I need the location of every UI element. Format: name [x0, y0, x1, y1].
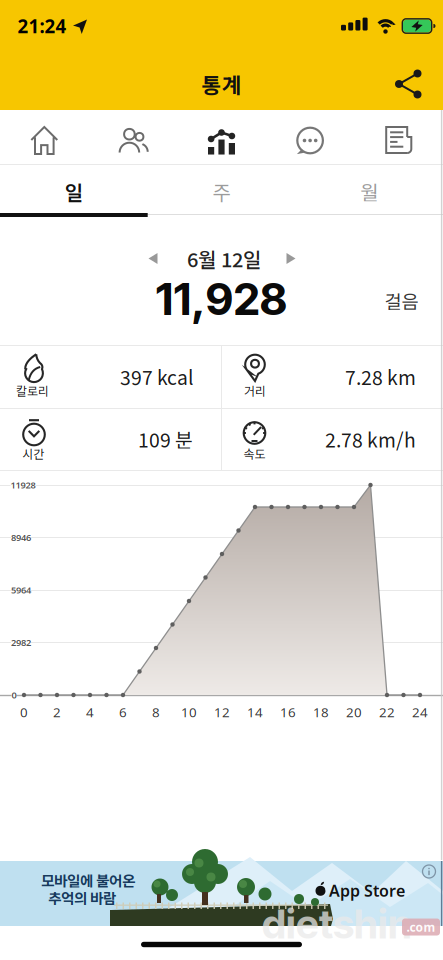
staticText: 주 [212, 177, 230, 206]
staticText: 7.28 km [345, 362, 416, 390]
staticText: 일 [65, 177, 83, 206]
staticText: 10 [181, 703, 197, 721]
staticText: 모바일에 불어온 [41, 869, 135, 891]
staticText: 시간 [22, 445, 44, 462]
staticText: 21:24 [17, 14, 66, 38]
staticText: 6월 12일 [187, 244, 261, 273]
button[interactable]: 주 [148, 167, 295, 216]
button[interactable]: Share [386, 62, 430, 106]
staticText: 11928 [10, 479, 35, 491]
button[interactable]: Chat [266, 110, 354, 164]
button[interactable]: Ad info [419, 861, 439, 881]
staticText: 397 kcal [120, 362, 193, 390]
button[interactable]: 일 [0, 167, 148, 216]
button[interactable]: Statistics [177, 110, 266, 164]
button[interactable]: Home [0, 110, 89, 164]
staticText: 12 [214, 703, 230, 721]
button[interactable]: Next day [272, 238, 312, 278]
staticText: 속도 [243, 445, 265, 462]
staticText: 6 [119, 703, 127, 721]
staticText: 16 [280, 703, 296, 721]
staticText: 월 [360, 177, 378, 206]
staticText: 4 [86, 703, 94, 721]
staticText: 109 분 [138, 425, 193, 453]
staticText: 2.78 km/h [325, 425, 416, 453]
staticText: 20 [346, 703, 362, 721]
staticText: 추억의 바람 [48, 887, 116, 908]
button[interactable]: 월 [295, 167, 443, 216]
staticText: 2 [53, 703, 61, 721]
button[interactable]: App Store ad [0, 861, 443, 926]
staticText: 8 [152, 703, 160, 721]
staticText: App Store [329, 880, 405, 901]
button[interactable]: Friends [89, 110, 177, 164]
staticText: 칼로리 [16, 382, 49, 399]
staticText: 22 [379, 703, 395, 721]
staticText: 걸음 [384, 287, 418, 314]
staticText: 24 [412, 703, 428, 721]
staticText: 0 [20, 703, 28, 721]
staticText: 5964 [11, 584, 31, 596]
staticText: 14 [247, 703, 263, 721]
staticText: 통계 [201, 69, 241, 99]
staticText: .com [406, 919, 435, 935]
staticText: 0 [11, 689, 16, 701]
staticText: dietshin [262, 900, 412, 948]
button[interactable]: Previous day [132, 238, 172, 278]
staticText: 8946 [11, 531, 31, 544]
staticText: 18 [313, 703, 329, 721]
staticText: 2982 [11, 636, 31, 649]
staticText: 11,928 [155, 272, 287, 326]
button[interactable]: News [354, 110, 443, 164]
staticText: 거리 [244, 382, 266, 399]
